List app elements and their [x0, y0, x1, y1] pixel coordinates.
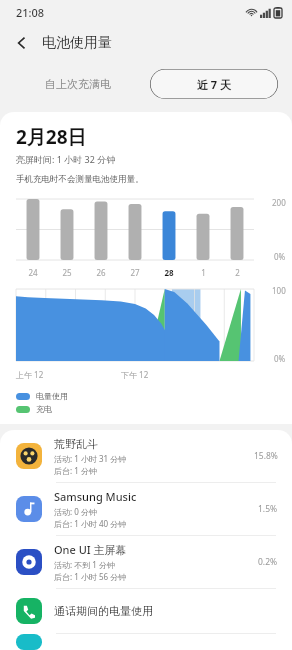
- staticText: 荒野乱斗: [54, 437, 98, 451]
- button[interactable]: 通话期间的电量使用: [0, 589, 292, 633]
- staticText: 1.5%: [258, 503, 278, 515]
- button[interactable]: 自上次充满电: [14, 69, 142, 99]
- staticText: 2月28日: [16, 124, 87, 150]
- staticText: 28: [164, 267, 174, 278]
- staticText: 活动: 1 小时 31 分钟: [54, 453, 127, 464]
- staticText: 后台: 1 小时 40 分钟: [54, 518, 127, 529]
- staticText: 后台: 1 分钟: [54, 465, 97, 476]
- staticText: 活动: 不到 1 分钟: [54, 559, 115, 570]
- staticText: 充电: [36, 404, 52, 414]
- staticText: 26: [96, 267, 106, 278]
- staticText: 电量使用: [36, 391, 68, 401]
- staticText: 27: [130, 267, 140, 278]
- staticText: 2: [235, 267, 240, 278]
- staticText: 200: [272, 197, 286, 208]
- staticText: Samsung Music: [54, 489, 137, 504]
- staticText: 自上次充满电: [45, 77, 111, 91]
- staticText: 0.2%: [258, 556, 278, 568]
- staticText: 21:08: [16, 5, 45, 20]
- button[interactable]: 荒野乱斗: [0, 430, 292, 482]
- staticText: 上午 12: [16, 369, 44, 380]
- staticText: 后台: 1 小时 56 分钟: [54, 571, 127, 582]
- staticText: 活动: 0 分钟: [54, 506, 97, 517]
- button[interactable]: Samsung Music: [0, 483, 292, 535]
- staticText: 15.8%: [254, 450, 278, 462]
- staticText: 下午 12: [121, 369, 149, 380]
- staticText: 电池使用量: [42, 34, 112, 52]
- staticText: 0%: [274, 353, 286, 364]
- staticText: 1: [201, 267, 206, 278]
- button[interactable]: One UI 主屏幕: [0, 536, 292, 588]
- staticText: 25: [62, 267, 72, 278]
- button[interactable]: Back: [6, 27, 38, 59]
- staticText: 近 7 天: [197, 77, 232, 92]
- button[interactable]: [0, 634, 292, 650]
- staticText: 0%: [274, 251, 286, 262]
- staticText: 亮屏时间: 1 小时 32 分钟: [16, 153, 116, 165]
- staticText: 24: [28, 267, 38, 278]
- button[interactable]: 近 7 天: [150, 69, 278, 99]
- staticText: 100: [272, 285, 286, 296]
- staticText: 通话期间的电量使用: [54, 604, 153, 618]
- staticText: One UI 主屏幕: [54, 542, 127, 557]
- staticText: 手机充电时不会测量电池使用量。: [16, 174, 144, 185]
